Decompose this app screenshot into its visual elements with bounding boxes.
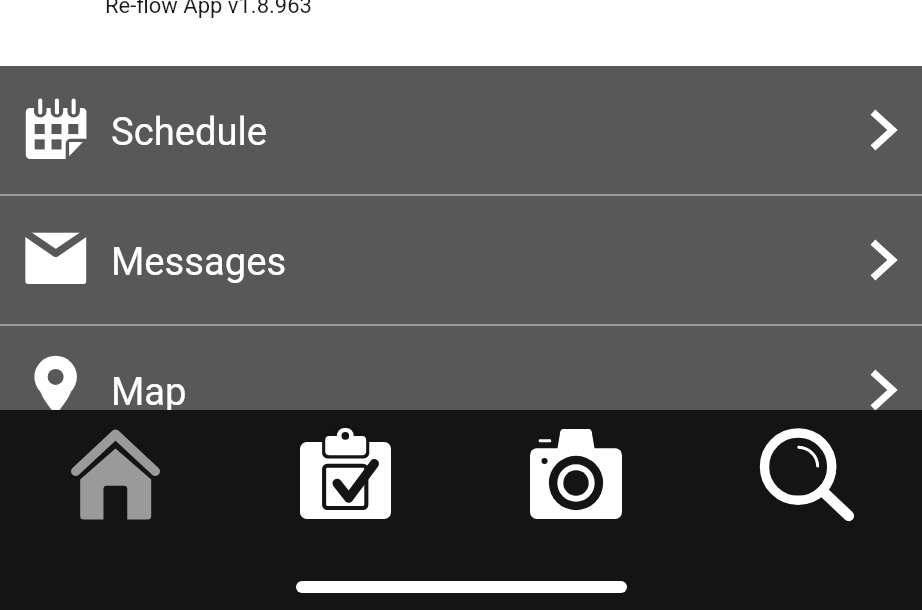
staticText: Messages <box>111 240 287 285</box>
staticText: Map <box>111 370 187 415</box>
staticText: Re-flow App v1.8.963 <box>105 0 312 19</box>
staticText: Schedule <box>111 110 268 155</box>
button[interactable]: Search <box>691 410 922 565</box>
button[interactable]: Home <box>0 410 230 565</box>
button[interactable]: Map <box>0 326 922 454</box>
button[interactable]: Schedule <box>0 66 922 194</box>
button[interactable]: Camera <box>460 410 691 565</box>
button[interactable]: Messages <box>0 196 922 324</box>
button[interactable]: Tasks <box>230 410 460 565</box>
